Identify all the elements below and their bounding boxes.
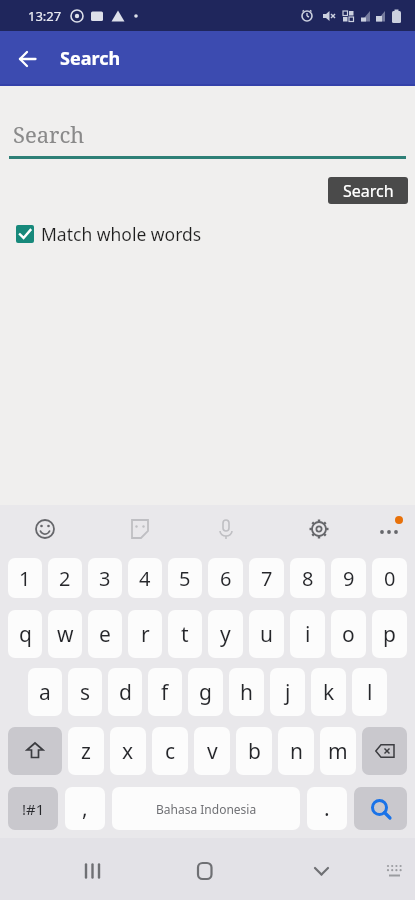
staticText: !#1 xyxy=(22,799,45,819)
staticText: 5 xyxy=(179,565,191,592)
staticText: h xyxy=(240,678,253,707)
button[interactable]: Match whole words xyxy=(16,222,202,246)
button[interactable]: . xyxy=(307,787,347,830)
button[interactable]: p xyxy=(372,610,407,658)
button[interactable]: 1 xyxy=(8,558,42,598)
staticText: Search xyxy=(343,180,394,202)
staticText: y xyxy=(220,620,231,649)
button[interactable]: l xyxy=(352,668,387,716)
staticText: 8 xyxy=(302,565,314,592)
staticText: 3 xyxy=(99,565,111,592)
button[interactable]: b xyxy=(236,727,272,775)
staticText: Match whole words xyxy=(41,222,202,246)
button[interactable]: i xyxy=(290,610,325,658)
staticText: g xyxy=(199,678,212,707)
button[interactable]: u xyxy=(249,610,284,658)
button[interactable]: f xyxy=(148,668,182,716)
staticText: 0 xyxy=(384,565,396,592)
button[interactable]: 9 xyxy=(331,558,366,598)
staticText: q xyxy=(19,620,32,649)
staticText: u xyxy=(260,620,273,649)
button[interactable]: y xyxy=(208,610,243,658)
staticText: f xyxy=(161,678,169,707)
button[interactable]: m xyxy=(320,727,356,775)
staticText: j xyxy=(285,678,291,707)
staticText: r xyxy=(141,620,150,649)
button[interactable]: d xyxy=(108,668,142,716)
staticText: a xyxy=(39,678,51,707)
button[interactable]: 0 xyxy=(372,558,407,598)
button[interactable]: 6 xyxy=(208,558,243,598)
button[interactable]: h xyxy=(229,668,264,716)
button[interactable] xyxy=(0,31,55,86)
staticText: z xyxy=(81,737,91,766)
button[interactable] xyxy=(0,838,139,900)
button[interactable] xyxy=(83,505,166,558)
staticText: i xyxy=(305,620,311,649)
button[interactable] xyxy=(8,727,62,775)
button[interactable] xyxy=(332,505,415,558)
staticText: t xyxy=(181,620,189,649)
staticText: 7 xyxy=(261,565,273,592)
button[interactable]: 3 xyxy=(88,558,122,598)
staticText: e xyxy=(99,620,111,649)
staticText: Search xyxy=(13,119,85,149)
button[interactable]: Bahasa Indonesia xyxy=(112,787,300,830)
button[interactable]: o xyxy=(331,610,366,658)
staticText: p xyxy=(383,620,396,649)
button[interactable]: x xyxy=(110,727,146,775)
staticText: 4 xyxy=(139,565,151,592)
staticText: 2 xyxy=(59,565,71,592)
button[interactable]: a xyxy=(28,668,62,716)
staticText: x xyxy=(122,737,134,766)
button[interactable]: k xyxy=(311,668,346,716)
button[interactable] xyxy=(0,505,83,558)
staticText: d xyxy=(119,678,132,707)
button[interactable]: 2 xyxy=(48,558,82,598)
staticText: o xyxy=(342,620,355,649)
button[interactable]: !#1 xyxy=(8,787,58,830)
button[interactable] xyxy=(277,838,415,900)
button[interactable]: c xyxy=(152,727,188,775)
staticText: 9 xyxy=(343,565,355,592)
staticText: w xyxy=(57,620,74,649)
button[interactable] xyxy=(249,505,332,558)
staticText: m xyxy=(328,737,348,766)
button[interactable]: g xyxy=(188,668,223,716)
button[interactable]: s xyxy=(68,668,102,716)
button[interactable]: 4 xyxy=(128,558,162,598)
staticText: Bahasa Indonesia xyxy=(156,801,257,817)
button[interactable]: v xyxy=(194,727,230,775)
button[interactable]: 5 xyxy=(168,558,202,598)
staticText: l xyxy=(367,678,373,707)
button[interactable]: z xyxy=(68,727,104,775)
button[interactable]: n xyxy=(278,727,314,775)
staticText: n xyxy=(290,737,303,766)
staticText: v xyxy=(207,737,218,766)
button[interactable]: j xyxy=(270,668,305,716)
button[interactable]: w xyxy=(48,610,82,658)
staticText: s xyxy=(80,678,91,707)
staticText: b xyxy=(248,737,261,766)
staticText: k xyxy=(323,678,335,707)
button[interactable]: 8 xyxy=(290,558,325,598)
staticText: 13:27 xyxy=(28,7,62,25)
button[interactable] xyxy=(362,727,407,775)
staticText: 1 xyxy=(19,565,31,592)
button[interactable]: Search xyxy=(328,177,408,204)
button[interactable]: Search xyxy=(0,91,415,159)
staticText: 6 xyxy=(220,565,232,592)
staticText: c xyxy=(165,737,176,766)
button[interactable]: r xyxy=(128,610,162,658)
staticText: Search xyxy=(60,46,121,71)
button[interactable] xyxy=(354,787,407,830)
staticText: . xyxy=(324,794,330,823)
button[interactable] xyxy=(166,505,249,558)
button[interactable]: e xyxy=(88,610,122,658)
button[interactable] xyxy=(139,838,277,900)
staticText: , xyxy=(82,794,88,823)
button[interactable]: , xyxy=(65,787,105,830)
button[interactable]: 7 xyxy=(249,558,284,598)
button[interactable]: q xyxy=(8,610,42,658)
button[interactable]: t xyxy=(168,610,202,658)
